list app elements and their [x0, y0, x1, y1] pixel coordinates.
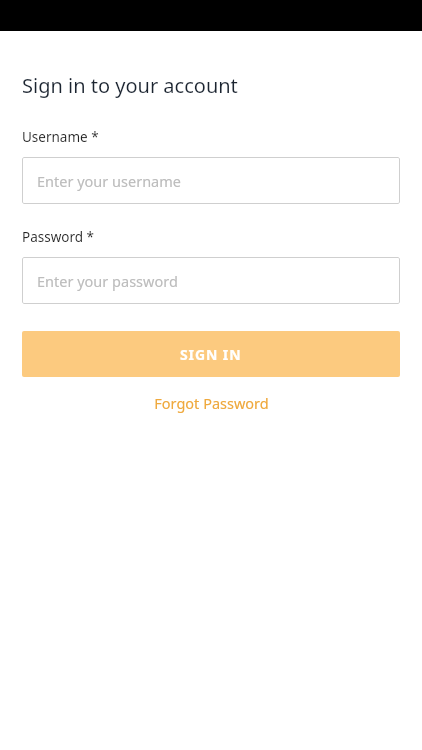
button[interactable]: Forgot Password: [22, 377, 400, 429]
button[interactable]: Enter your password: [22, 257, 400, 304]
button[interactable]: SIGN IN: [22, 331, 400, 377]
button[interactable]: Enter your username: [22, 157, 400, 204]
staticText: Forgot Password: [154, 393, 269, 413]
staticText: Username *: [22, 128, 99, 146]
staticText: Password *: [22, 228, 95, 246]
staticText: Enter your password: [37, 271, 178, 291]
staticText: SIGN IN: [180, 345, 242, 364]
staticText: Sign in to your account: [22, 72, 238, 99]
staticText: Enter your username: [37, 171, 181, 191]
